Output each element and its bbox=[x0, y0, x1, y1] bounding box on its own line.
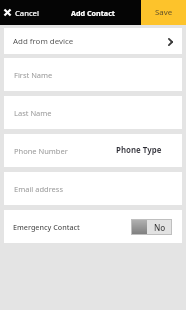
staticText: Email address bbox=[14, 184, 64, 194]
button[interactable]: Last Name bbox=[4, 96, 182, 129]
staticText: First Name bbox=[14, 70, 53, 80]
staticText: Cancel bbox=[15, 8, 39, 18]
button[interactable]: Phone Type bbox=[108, 141, 174, 160]
button[interactable]: Emergency contact toggle, No bbox=[131, 219, 172, 235]
staticText: Add Contact bbox=[71, 8, 115, 18]
staticText: Last Name bbox=[14, 108, 52, 118]
button[interactable]: Add from device bbox=[4, 28, 182, 54]
button[interactable]: Save bbox=[141, 0, 186, 25]
staticText: Phone Number bbox=[14, 146, 68, 156]
staticText: Phone Type bbox=[116, 145, 162, 156]
button[interactable]: Emergency Contact bbox=[4, 210, 182, 243]
staticText: Add from device bbox=[13, 36, 74, 47]
button[interactable]: First Name bbox=[4, 58, 182, 91]
staticText: No bbox=[154, 222, 166, 233]
button[interactable]: Email address bbox=[4, 172, 182, 205]
button[interactable]: Phone Number bbox=[4, 134, 182, 167]
button[interactable]: Close bbox=[0, 0, 45, 25]
other: Open device contacts bbox=[168, 38, 173, 46]
staticText: Save bbox=[155, 7, 173, 18]
other: Close bbox=[4, 9, 11, 16]
staticText: Emergency Contact bbox=[13, 222, 80, 232]
